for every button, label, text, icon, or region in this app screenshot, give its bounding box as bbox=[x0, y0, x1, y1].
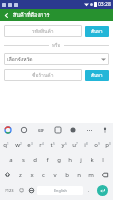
staticText: i bbox=[84, 141, 86, 149]
button[interactable]: n bbox=[73, 167, 85, 182]
button[interactable]: . bbox=[84, 182, 94, 198]
button[interactable]: e bbox=[24, 137, 36, 152]
staticText: 0 bbox=[109, 142, 111, 146]
staticText: c bbox=[42, 171, 45, 179]
staticText: x bbox=[30, 171, 34, 179]
staticText: ?123 bbox=[5, 188, 14, 193]
staticText: r bbox=[39, 141, 42, 149]
button[interactable]: More bbox=[85, 126, 93, 134]
button[interactable]: i bbox=[80, 137, 91, 152]
staticText: 1 bbox=[7, 142, 9, 146]
staticText: รหัสสินค้า bbox=[32, 27, 54, 35]
staticText: f bbox=[46, 156, 49, 164]
staticText: o bbox=[94, 141, 98, 149]
button[interactable]: รหัสสินค้า bbox=[4, 25, 82, 37]
staticText: w bbox=[15, 141, 20, 149]
button[interactable]: ค้นหา bbox=[85, 70, 109, 81]
staticText: English bbox=[54, 188, 67, 193]
button[interactable]: ชื่อร้านค้า bbox=[4, 69, 82, 81]
button[interactable]: d bbox=[29, 152, 41, 167]
button[interactable]: a bbox=[5, 152, 17, 167]
button[interactable]: g bbox=[53, 152, 64, 167]
staticText: 2 bbox=[20, 142, 22, 146]
button[interactable]: j bbox=[75, 152, 86, 167]
button[interactable]: Backspace bbox=[97, 167, 113, 182]
staticText: j bbox=[80, 156, 82, 164]
staticText: q bbox=[3, 141, 7, 149]
staticText: p bbox=[105, 141, 109, 149]
staticText: z bbox=[19, 171, 22, 179]
button[interactable]: z bbox=[15, 167, 26, 182]
button[interactable]: k bbox=[86, 152, 97, 167]
button[interactable]: t bbox=[47, 137, 58, 152]
button[interactable]: r bbox=[36, 137, 47, 152]
staticText: 5 bbox=[53, 142, 55, 146]
staticText: b bbox=[65, 171, 69, 179]
staticText: ค้นหา bbox=[91, 72, 103, 79]
button[interactable]: v bbox=[49, 167, 61, 182]
button[interactable]: x bbox=[26, 167, 37, 182]
button[interactable]: Settings bbox=[69, 126, 77, 134]
staticText: 9 bbox=[98, 142, 100, 146]
staticText: ชื่อร้านค้า bbox=[32, 71, 54, 79]
staticText: 3 bbox=[31, 142, 33, 146]
staticText: 03:28 bbox=[98, 1, 111, 8]
button[interactable]: w bbox=[12, 137, 24, 152]
button[interactable]: c bbox=[37, 167, 49, 182]
button[interactable]: Emoji bbox=[20, 126, 28, 134]
button[interactable]: m bbox=[85, 167, 97, 182]
staticText: 4 bbox=[42, 142, 44, 146]
button[interactable]: y bbox=[58, 137, 69, 152]
button[interactable]: Voice input bbox=[101, 126, 109, 134]
button[interactable]: เลือกจังหวัด bbox=[4, 53, 109, 65]
button[interactable]: English bbox=[37, 186, 83, 195]
button[interactable]: Google bbox=[4, 126, 12, 134]
staticText: v bbox=[53, 171, 57, 179]
staticText: s bbox=[22, 156, 25, 164]
button[interactable]: ค้นหา bbox=[85, 26, 109, 37]
button[interactable]: f bbox=[41, 152, 53, 167]
staticText: m bbox=[88, 171, 94, 179]
button[interactable]: p bbox=[102, 137, 113, 152]
staticText: 6 bbox=[65, 142, 67, 146]
staticText: หรือ bbox=[52, 42, 61, 49]
staticText: l bbox=[102, 156, 104, 164]
staticText: สินค้าที่ต้องการ bbox=[13, 11, 50, 20]
staticText: k bbox=[90, 156, 94, 164]
staticText: เลือกจังหวัด bbox=[7, 55, 33, 63]
staticText: a bbox=[9, 156, 13, 164]
button[interactable]: l bbox=[97, 152, 108, 167]
staticText: ค้นหา bbox=[91, 28, 103, 35]
button[interactable]: Shift bbox=[0, 167, 15, 182]
button[interactable]: ?123 bbox=[2, 182, 17, 198]
button[interactable]: h bbox=[64, 152, 75, 167]
button[interactable]: Emoji bbox=[17, 182, 26, 198]
staticText: GIF bbox=[38, 128, 44, 133]
staticText: y bbox=[61, 141, 65, 149]
button[interactable]: o bbox=[91, 137, 102, 152]
staticText: d bbox=[33, 156, 37, 164]
staticText: 8 bbox=[86, 142, 88, 146]
button[interactable]: Change language bbox=[26, 182, 36, 198]
staticText: e bbox=[27, 141, 31, 149]
staticText: h bbox=[68, 156, 72, 164]
button[interactable]: b bbox=[61, 167, 73, 182]
staticText: u bbox=[72, 141, 76, 149]
button[interactable]: q bbox=[0, 137, 12, 152]
button[interactable]: u bbox=[69, 137, 80, 152]
button[interactable]: Enter bbox=[94, 182, 111, 198]
staticText: . bbox=[88, 187, 90, 194]
staticText: n bbox=[77, 171, 81, 179]
button[interactable]: GIF bbox=[36, 125, 46, 135]
button[interactable]: Back bbox=[0, 9, 12, 21]
staticText: ☺ bbox=[19, 187, 25, 193]
button[interactable]: Sticker bbox=[54, 126, 62, 134]
button[interactable]: s bbox=[17, 152, 29, 167]
staticText: g bbox=[57, 156, 61, 164]
staticText: t bbox=[50, 141, 53, 149]
staticText: 7 bbox=[76, 142, 78, 146]
